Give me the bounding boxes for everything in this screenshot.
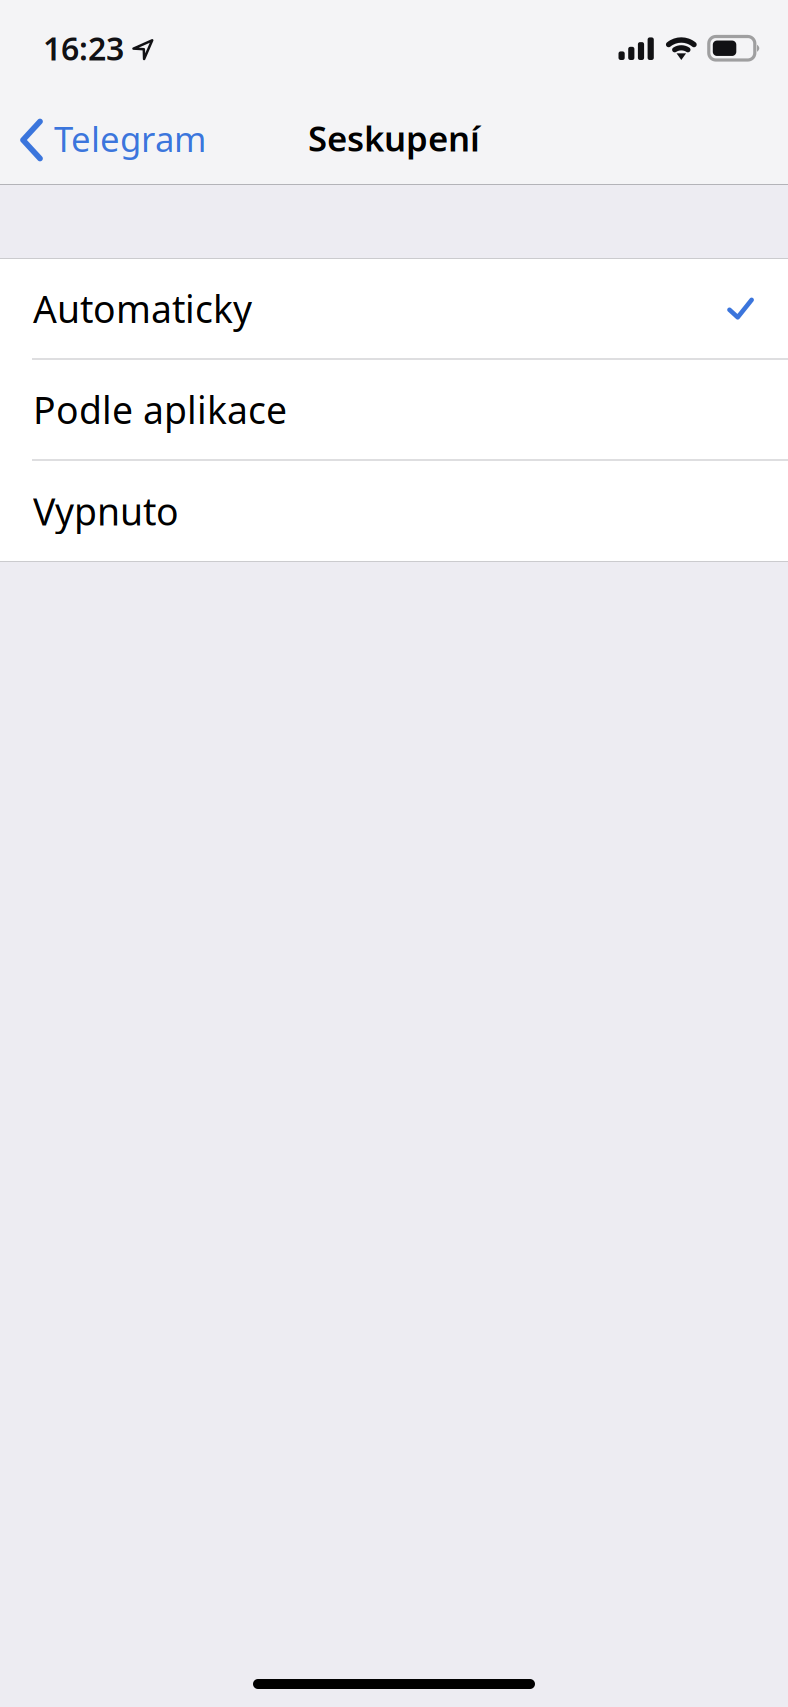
staticText: Podle aplikace [33,385,287,434]
staticText: Vypnuto [33,486,179,536]
button[interactable]: Vypnuto [0,461,788,561]
staticText: Telegram [54,115,206,161]
button[interactable]: Back to Telegram [0,92,220,188]
staticText: Seskupení [308,115,480,161]
staticText: 16:23 [43,27,124,69]
button[interactable]: Podle aplikace [0,360,788,459]
button[interactable]: Automaticky [0,259,788,358]
staticText: Automaticky [33,284,252,333]
